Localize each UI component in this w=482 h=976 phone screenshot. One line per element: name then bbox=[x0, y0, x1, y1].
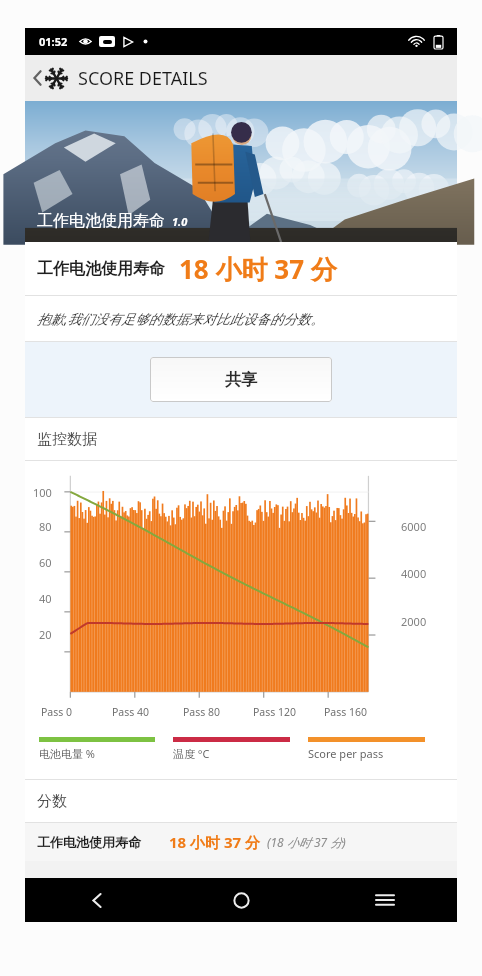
staticText: Pass 40 bbox=[112, 705, 150, 719]
staticText: 工作电池使用寿命 bbox=[37, 834, 141, 850]
staticText: 01:52 bbox=[39, 34, 68, 49]
staticText: 18 小时 37 分 bbox=[169, 832, 261, 852]
staticText: 工作电池使用寿命 bbox=[37, 259, 165, 279]
staticText: 分数 bbox=[37, 792, 67, 811]
button[interactable]: 共享 bbox=[150, 357, 332, 402]
staticText: 温度 °C bbox=[173, 746, 210, 761]
staticText: 80 bbox=[39, 519, 52, 534]
staticText: 电池电量 % bbox=[39, 746, 96, 761]
staticText: 20 bbox=[39, 627, 52, 642]
staticText: 2000 bbox=[401, 614, 427, 629]
staticText: SCORE DETAILS bbox=[78, 66, 208, 91]
button[interactable]: Back bbox=[25, 878, 169, 922]
staticText: 40 bbox=[39, 591, 52, 606]
staticText: Pass 160 bbox=[324, 705, 368, 719]
staticText: 抱歉,我们没有足够的数据来对比此设备的分数。 bbox=[37, 310, 324, 328]
staticText: 共享 bbox=[225, 370, 257, 390]
button[interactable]: Recent apps bbox=[313, 878, 457, 922]
staticText: (18 小时 37 分) bbox=[267, 834, 346, 850]
staticText: Pass 0 bbox=[41, 705, 73, 719]
staticText: 100 bbox=[33, 485, 52, 500]
button[interactable]: Home bbox=[169, 878, 313, 922]
staticText: 60 bbox=[39, 555, 52, 570]
staticText: Pass 120 bbox=[253, 705, 297, 719]
staticText: Score per pass bbox=[308, 746, 384, 761]
staticText: 工作电池使用寿命 bbox=[37, 211, 165, 231]
staticText: 监控数据 bbox=[37, 430, 97, 449]
staticText: Pass 80 bbox=[183, 705, 221, 719]
staticText: 1.0 bbox=[172, 214, 188, 229]
button[interactable]: SCORE DETAILS bbox=[32, 55, 208, 101]
staticText: 6000 bbox=[401, 519, 427, 534]
staticText: 4000 bbox=[401, 566, 427, 581]
staticText: 18 小时 37 分 bbox=[179, 251, 337, 287]
